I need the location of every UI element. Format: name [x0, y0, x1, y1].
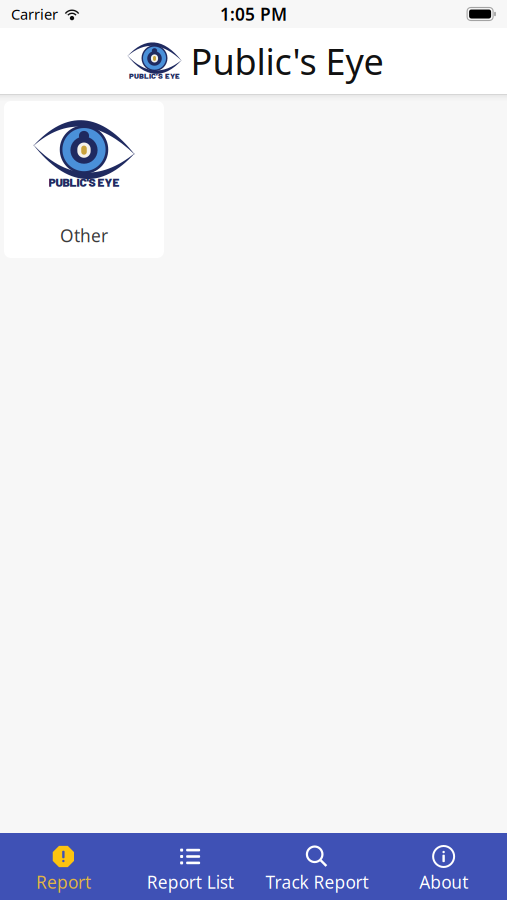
staticText: Public's Eye [190, 37, 383, 85]
staticText: PUBLIC'S EYE [129, 71, 180, 80]
staticText: PUBLIC'S EYE [48, 175, 119, 189]
button[interactable]: Report [0, 833, 127, 900]
staticText: Other [60, 224, 108, 247]
button[interactable]: Track Report [253, 833, 380, 900]
staticText: Carrier [11, 4, 58, 24]
button[interactable]: About [380, 833, 507, 900]
button[interactable]: Report List [127, 833, 254, 900]
staticText: Report [36, 870, 91, 893]
staticText: Report List [147, 870, 234, 893]
staticText: About [419, 870, 468, 893]
button[interactable]: PUBLIC'S EYE [4, 101, 164, 258]
staticText: Track Report [265, 870, 368, 893]
staticText: 1:05 PM [220, 2, 287, 25]
